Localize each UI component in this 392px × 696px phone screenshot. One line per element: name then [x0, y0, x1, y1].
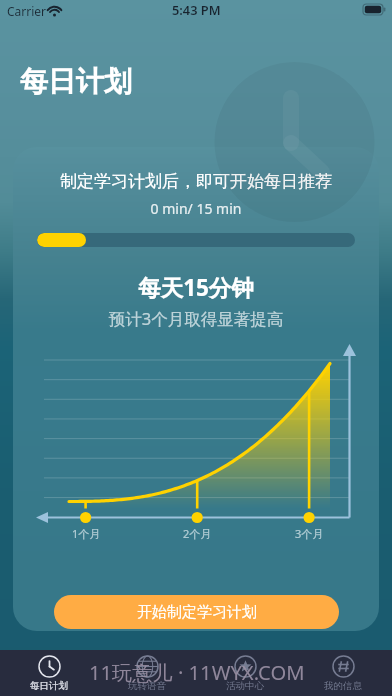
- staticText: 开始制定学习计划: [137, 603, 257, 622]
- staticText: 0 min/ 15 min: [13, 199, 379, 218]
- button[interactable]: 开始制定学习计划: [54, 595, 339, 629]
- staticText: 玩转语音: [128, 680, 166, 692]
- staticText: 我的信息: [324, 680, 362, 692]
- staticText: 3个月: [295, 526, 324, 541]
- button[interactable]: 每日计划: [0, 650, 98, 696]
- other: 每日计划: [38, 655, 61, 678]
- staticText: 2个月: [183, 526, 212, 541]
- staticText: 5:43 PM: [172, 1, 221, 18]
- other: 我的信息: [332, 655, 355, 678]
- button[interactable]: 我的信息: [294, 650, 392, 696]
- staticText: 制定学习计划后，即可开始每日推荐: [13, 171, 379, 192]
- staticText: 1个月: [72, 526, 101, 541]
- button[interactable]: 玩转语音: [98, 650, 196, 696]
- staticText: 11玩意儿 · 11WYX.COM: [89, 658, 305, 686]
- staticText: 每日计划: [30, 680, 68, 692]
- staticText: 预计3个月取得显著提高: [13, 307, 379, 330]
- staticText: 每日计划: [20, 64, 132, 99]
- staticText: 活动中心: [226, 680, 264, 692]
- button[interactable]: 活动中心: [196, 650, 294, 696]
- staticText: Carrier: [7, 3, 47, 19]
- staticText: 每天15分钟: [13, 272, 379, 303]
- other: 活动中心: [234, 655, 257, 678]
- other: 玩转语音: [136, 655, 159, 678]
